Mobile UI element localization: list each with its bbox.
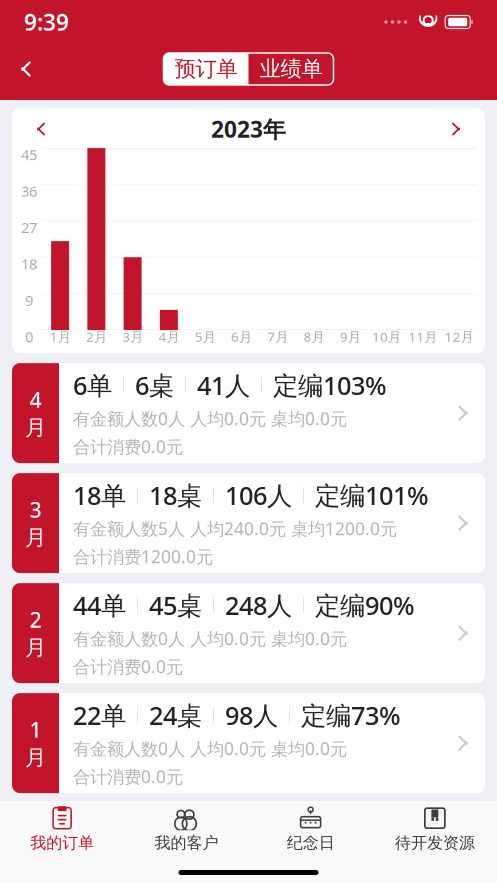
button[interactable]: 3 <box>0 473 497 573</box>
button[interactable]: 返回 <box>6 47 46 91</box>
staticText: 我的订单 <box>30 833 94 853</box>
staticText: 2023年 <box>211 114 286 144</box>
staticText: 8月 <box>303 328 324 345</box>
staticText: 11月 <box>408 328 437 345</box>
staticText: 预订单 <box>174 56 237 82</box>
staticText: 44单 <box>73 588 126 622</box>
staticText: 有金额人数0人 人均0.0元 桌均0.0元 <box>73 627 347 650</box>
staticText: 定编90% <box>315 588 415 622</box>
staticText: 合计消费1200.0元 <box>73 545 213 568</box>
button[interactable]: 下一年 <box>441 114 471 144</box>
staticText: 合计消费0.0元 <box>73 655 183 678</box>
staticText: 我的客户 <box>154 833 218 853</box>
staticText: 6月 <box>231 328 252 345</box>
button[interactable]: 纪念日 <box>248 800 373 853</box>
button[interactable]: 我的订单 <box>0 800 124 853</box>
staticText: 月 <box>25 415 46 441</box>
staticText: 业绩单 <box>259 56 322 82</box>
button[interactable]: 1 <box>0 693 497 793</box>
staticText: 106人 <box>225 478 292 512</box>
staticText: 6桌 <box>135 368 174 402</box>
staticText: 9月 <box>340 328 361 345</box>
staticText: 1 <box>29 715 41 744</box>
button[interactable]: 2 <box>0 583 497 683</box>
staticText: 5月 <box>195 328 216 345</box>
staticText: 18 <box>21 254 37 274</box>
staticText: 有金额人数0人 人均0.0元 桌均0.0元 <box>73 737 347 760</box>
staticText: 有金额人数5人 人均240.0元 桌均1200.0元 <box>73 517 397 540</box>
staticText: 248人 <box>225 588 292 622</box>
staticText: 月 <box>25 745 46 771</box>
staticText: 月 <box>25 635 46 661</box>
staticText: 10月 <box>372 328 401 345</box>
staticText: 27 <box>21 218 37 237</box>
staticText: 3 <box>29 495 41 524</box>
staticText: 0 <box>25 327 33 346</box>
staticText: 合计消费0.0元 <box>73 435 183 458</box>
button[interactable]: 待开发资源 <box>373 800 497 853</box>
staticText: 9:39 <box>24 7 69 37</box>
staticText: 9 <box>25 290 33 310</box>
staticText: 纪念日 <box>287 833 335 853</box>
button[interactable]: 预订单 <box>163 53 248 85</box>
staticText: 1月 <box>50 328 71 345</box>
button[interactable]: 上一年 <box>26 114 56 144</box>
staticText: 41人 <box>197 368 250 402</box>
staticText: 定编73% <box>301 698 401 732</box>
staticText: 18桌 <box>149 478 202 512</box>
staticText: 2 <box>29 605 41 634</box>
staticText: 24桌 <box>149 698 202 732</box>
staticText: 4月 <box>158 328 179 345</box>
staticText: 6单 <box>73 368 112 402</box>
staticText: 有金额人数0人 人均0.0元 桌均0.0元 <box>73 407 347 430</box>
staticText: 7月 <box>267 328 288 345</box>
staticText: 3月 <box>122 328 143 345</box>
staticText: 定编101% <box>315 478 429 512</box>
button[interactable]: 4 <box>0 363 497 463</box>
staticText: 定编103% <box>273 368 387 402</box>
staticText: 18单 <box>73 478 126 512</box>
staticText: 22单 <box>73 698 126 732</box>
staticText: 36 <box>21 181 37 201</box>
staticText: 月 <box>25 525 46 551</box>
staticText: 45桌 <box>149 588 202 622</box>
staticText: 待开发资源 <box>395 833 475 853</box>
staticText: 45 <box>21 145 37 164</box>
staticText: 4 <box>29 385 41 414</box>
button[interactable]: 我的客户 <box>124 800 248 853</box>
staticText: 2月 <box>86 328 107 345</box>
button[interactable]: 业绩单 <box>248 53 333 85</box>
staticText: 合计消费0.0元 <box>73 765 183 788</box>
staticText: 98人 <box>225 698 278 732</box>
staticText: 12月 <box>444 328 473 345</box>
